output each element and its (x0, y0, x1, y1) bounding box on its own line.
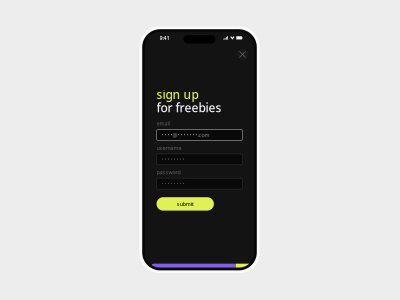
staticText: 9:41 (160, 34, 170, 41)
staticText: username (156, 144, 181, 151)
staticText: • • • • • • • • (161, 156, 184, 163)
staticText: password (156, 169, 180, 176)
staticText: for freebies (156, 100, 221, 116)
staticText: • • • • • • • • (161, 180, 184, 187)
staticText: • • • •@• • • • • • •.com (161, 131, 209, 138)
staticText: sign up (156, 86, 198, 102)
button[interactable]: submit (156, 197, 214, 211)
staticText: submit (177, 200, 194, 207)
button[interactable]: Close (237, 49, 248, 60)
staticText: email (156, 120, 169, 127)
